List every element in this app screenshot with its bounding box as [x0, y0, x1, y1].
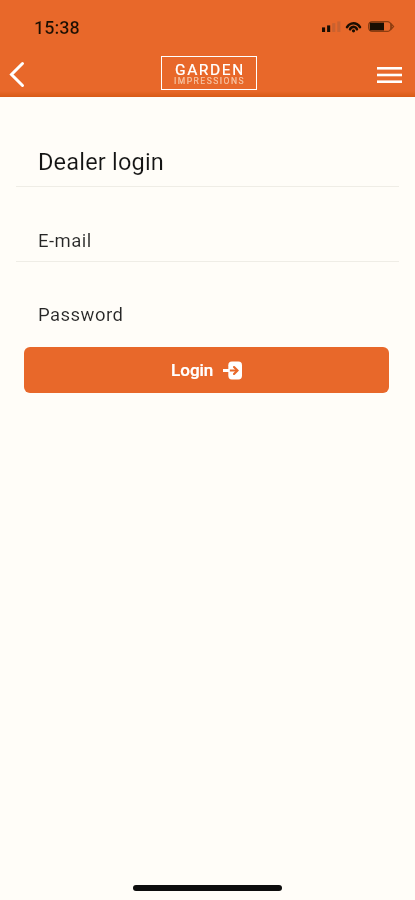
staticText: GARDEN	[175, 61, 245, 79]
button[interactable]: Back	[0, 51, 40, 97]
staticText: 15:38	[34, 17, 80, 38]
staticText: Password	[38, 304, 124, 326]
button[interactable]: Menu	[366, 53, 412, 97]
staticText: IMPRESSIONS	[174, 76, 246, 86]
staticText: Login	[171, 360, 214, 380]
button[interactable]: Login	[24, 347, 389, 393]
staticText: Dealer login	[38, 148, 165, 176]
staticText: E-mail	[38, 230, 92, 252]
